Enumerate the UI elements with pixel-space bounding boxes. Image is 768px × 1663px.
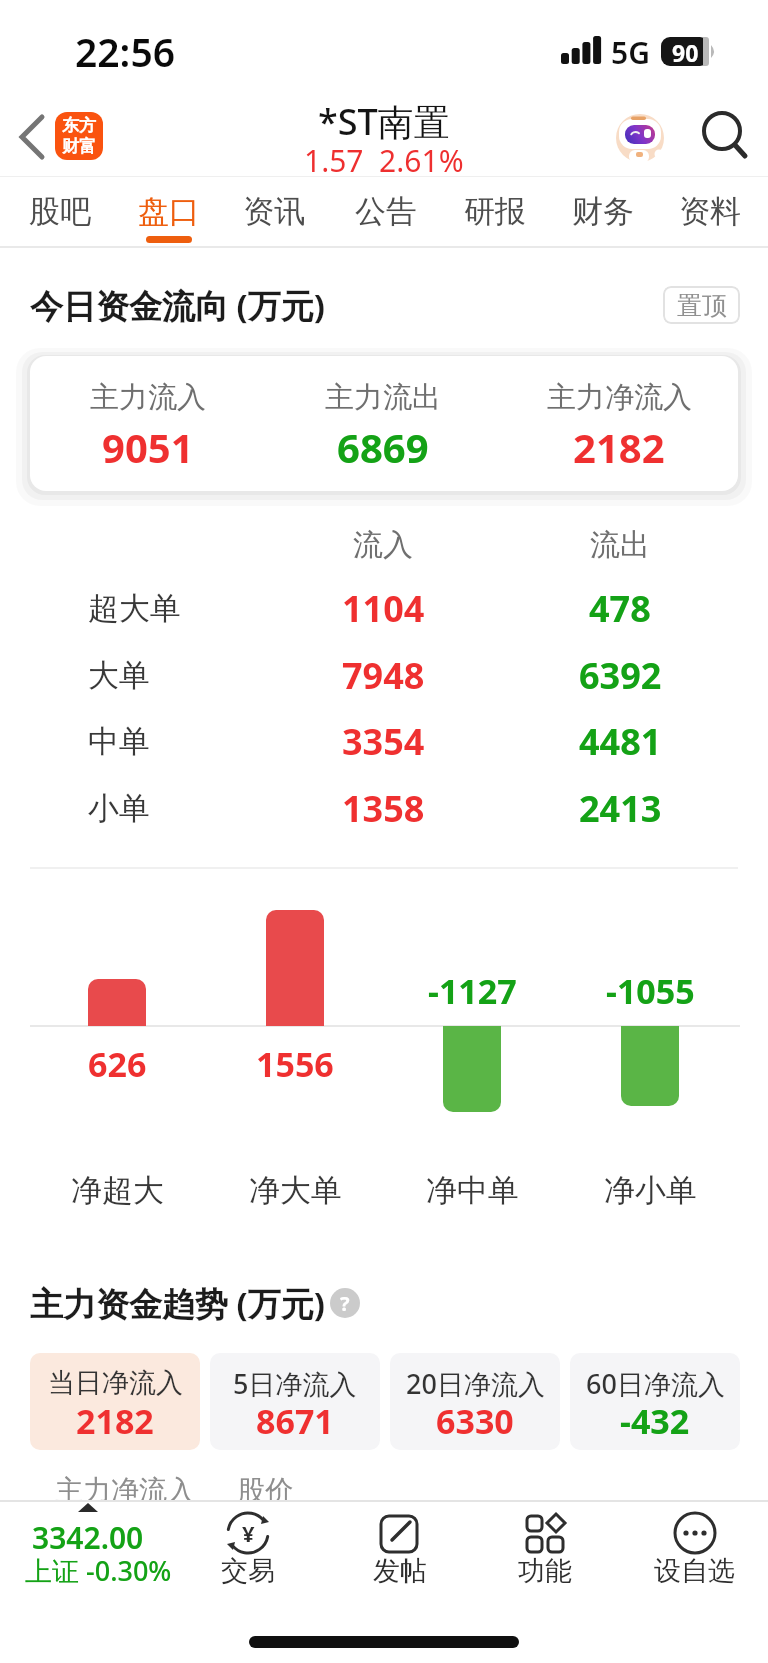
- staticText: 7948: [342, 651, 425, 700]
- staticText: 上证 -0.30%: [25, 1552, 172, 1589]
- staticText: 90: [672, 37, 699, 66]
- staticText: 设自选: [654, 1554, 735, 1588]
- button[interactable]: [210, 1503, 290, 1598]
- button[interactable]: [390, 1353, 560, 1450]
- staticText: 资料: [679, 192, 741, 231]
- staticText: 今日资金流向 (万元): [30, 283, 325, 328]
- staticText: 净小单: [604, 1171, 697, 1210]
- staticText: -1127: [428, 968, 517, 1014]
- staticText: 主力净流入: [547, 379, 692, 416]
- staticText: 6869: [337, 420, 429, 474]
- button[interactable]: 置顶: [663, 286, 740, 324]
- staticText: 2182: [573, 420, 665, 474]
- staticText: 公告: [355, 192, 417, 231]
- staticText: 20日净流入: [406, 1365, 545, 1402]
- staticText: 6330: [436, 1398, 514, 1444]
- button[interactable]: [570, 1353, 740, 1450]
- staticText: 财务: [572, 192, 634, 231]
- button[interactable]: 资讯: [220, 183, 328, 239]
- staticText: ?: [340, 1290, 350, 1317]
- button[interactable]: 财务: [549, 183, 657, 239]
- staticText: 东方: [62, 115, 96, 136]
- staticText: 净超大: [71, 1171, 164, 1210]
- staticText: 净大单: [249, 1171, 342, 1210]
- staticText: 478: [589, 584, 651, 633]
- staticText: 5日净流入: [233, 1365, 357, 1402]
- staticText: ¥: [242, 1518, 255, 1548]
- staticText: 盘口: [138, 192, 200, 231]
- button[interactable]: [10, 105, 60, 169]
- button[interactable]: [650, 1503, 740, 1598]
- staticText: 主力净流入: [55, 1473, 195, 1508]
- staticText: 22:56: [75, 25, 175, 78]
- button[interactable]: 公告: [332, 183, 440, 239]
- button[interactable]: 研报: [441, 183, 549, 239]
- button[interactable]: [15, 1505, 185, 1595]
- staticText: 流入: [353, 526, 413, 564]
- staticText: 大单: [88, 656, 150, 695]
- staticText: 交易: [221, 1554, 275, 1588]
- staticText: -432: [620, 1398, 690, 1444]
- button[interactable]: [612, 110, 668, 166]
- staticText: -1055: [606, 968, 695, 1014]
- staticText: 3342.00: [32, 1517, 144, 1558]
- button[interactable]: [210, 1353, 380, 1450]
- staticText: 中单: [88, 722, 150, 761]
- staticText: 超大单: [88, 589, 181, 628]
- button[interactable]: [694, 105, 756, 169]
- staticText: 置顶: [677, 290, 727, 321]
- staticText: 主力流入: [90, 379, 206, 416]
- staticText: 1556: [256, 1041, 334, 1087]
- button[interactable]: [360, 1503, 440, 1598]
- staticText: 流出: [590, 526, 650, 564]
- button[interactable]: [505, 1503, 585, 1598]
- button[interactable]: [30, 1353, 200, 1450]
- button[interactable]: 资料: [656, 183, 764, 239]
- button[interactable]: 盘口: [115, 183, 223, 239]
- staticText: *ST南置: [318, 97, 450, 146]
- staticText: 主力流出: [325, 379, 441, 416]
- staticText: 6392: [579, 651, 662, 700]
- staticText: 净中单: [426, 1171, 519, 1210]
- staticText: 当日净流入: [48, 1366, 183, 1400]
- staticText: 2413: [579, 784, 662, 833]
- staticText: 1.57 2.61%: [304, 140, 464, 181]
- staticText: 3354: [342, 717, 425, 766]
- staticText: 2182: [76, 1398, 154, 1444]
- staticText: 功能: [518, 1554, 572, 1588]
- staticText: 财富: [62, 136, 96, 157]
- button[interactable]: ?: [330, 1288, 360, 1318]
- staticText: 60日净流入: [586, 1365, 725, 1402]
- staticText: 5G: [611, 32, 650, 73]
- button[interactable]: 股吧: [6, 183, 114, 239]
- staticText: 研报: [464, 192, 526, 231]
- staticText: 9051: [102, 420, 194, 474]
- staticText: 小单: [88, 789, 150, 828]
- staticText: 发帖: [373, 1554, 427, 1588]
- staticText: 主力资金趋势 (万元): [30, 1281, 325, 1326]
- staticText: 股吧: [29, 192, 91, 231]
- staticText: 1104: [342, 584, 425, 633]
- staticText: 1358: [342, 784, 425, 833]
- staticText: 8671: [256, 1398, 334, 1444]
- staticText: 股价: [237, 1473, 293, 1508]
- staticText: 626: [88, 1041, 147, 1087]
- staticText: 4481: [579, 717, 662, 766]
- staticText: 资讯: [243, 192, 305, 231]
- button[interactable]: 东方: [55, 112, 103, 160]
